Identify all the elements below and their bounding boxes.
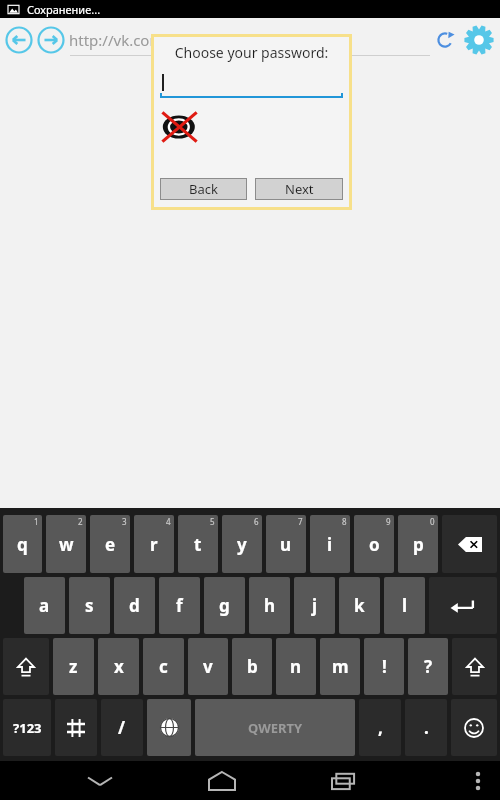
staticText: 5 — [210, 516, 215, 527]
staticText: v — [203, 655, 213, 678]
button[interactable]: b — [232, 638, 272, 695]
button[interactable]: k — [339, 577, 380, 634]
button[interactable]: Hide keyboard — [78, 761, 122, 800]
button[interactable]: / — [101, 699, 143, 756]
staticText: l — [402, 594, 408, 617]
staticText: u — [280, 533, 292, 556]
staticText: d — [129, 594, 140, 617]
staticText: b — [247, 655, 258, 678]
button[interactable]: h — [249, 577, 290, 634]
staticText: / — [118, 716, 126, 739]
staticText: a — [39, 594, 50, 617]
button[interactable]: ?123 — [3, 699, 51, 756]
button[interactable]: ! — [364, 638, 404, 695]
button[interactable]: s — [69, 577, 110, 634]
staticText: k — [354, 594, 365, 617]
staticText: 0 — [430, 516, 435, 527]
button[interactable]: p — [398, 515, 438, 573]
button[interactable]: Home — [200, 761, 244, 800]
button[interactable]: x — [98, 638, 139, 695]
staticText: c — [159, 655, 168, 678]
staticText: q — [17, 533, 28, 556]
button[interactable]: l — [384, 577, 425, 634]
staticText: h — [264, 594, 276, 617]
staticText: 4 — [166, 516, 171, 527]
button[interactable]: j — [294, 577, 335, 634]
button[interactable]: Reload — [430, 25, 460, 55]
staticText: Back — [189, 180, 218, 198]
button[interactable]: Delete — [442, 515, 497, 573]
button[interactable]: e — [90, 515, 130, 573]
button[interactable]: , — [359, 699, 401, 756]
staticText: n — [290, 655, 302, 678]
button[interactable]: More options — [460, 763, 496, 799]
button[interactable]: Change language — [147, 699, 191, 756]
button[interactable]: c — [143, 638, 184, 695]
staticText: e — [105, 533, 116, 556]
button[interactable]: f — [159, 577, 200, 634]
staticText: g — [219, 594, 230, 617]
button[interactable]: Settings — [55, 699, 97, 756]
staticText: 9 — [386, 516, 391, 527]
staticText: f — [176, 594, 183, 617]
button[interactable]: ? — [408, 638, 448, 695]
staticText: r — [150, 533, 158, 556]
staticText: p — [413, 533, 424, 556]
button[interactable]: g — [204, 577, 245, 634]
staticText: Сохранение... — [27, 2, 101, 17]
staticText: 3 — [122, 516, 127, 527]
button[interactable]: Shift — [452, 638, 497, 695]
button[interactable]: o — [354, 515, 394, 573]
staticText: . — [424, 716, 429, 739]
staticText: 6 — [254, 516, 259, 527]
staticText: http://vk.com/join — [69, 30, 196, 50]
button[interactable]: q — [3, 515, 42, 573]
button[interactable]: Enter — [429, 577, 497, 634]
staticText: j — [312, 594, 318, 617]
button[interactable]: v — [188, 638, 228, 695]
staticText: s — [85, 594, 94, 617]
button[interactable]: d — [114, 577, 155, 634]
button[interactable]: Back — [3, 24, 35, 56]
button[interactable]: http://vk.com/join — [69, 24, 430, 56]
button[interactable]: QWERTY — [195, 699, 355, 756]
button[interactable]: Shift — [3, 638, 49, 695]
staticText: t — [194, 533, 202, 556]
staticText: Next — [285, 180, 314, 198]
button[interactable]: n — [276, 638, 316, 695]
button[interactable]: Next — [255, 178, 343, 200]
staticText: m — [332, 655, 349, 678]
staticText: , — [378, 716, 383, 739]
staticText: 7 — [298, 516, 303, 527]
button[interactable]: m — [320, 638, 360, 695]
staticText: w — [59, 533, 74, 556]
button[interactable]: y — [222, 515, 262, 573]
staticText: i — [327, 533, 333, 556]
button[interactable]: Recents — [322, 761, 366, 800]
button[interactable]: i — [310, 515, 350, 573]
button[interactable]: z — [53, 638, 94, 695]
button[interactable]: u — [266, 515, 306, 573]
button[interactable]: Forward — [35, 24, 67, 56]
button[interactable]: a — [24, 577, 65, 634]
staticText: x — [114, 655, 124, 678]
button[interactable]: r — [134, 515, 174, 573]
button[interactable]: Back — [160, 178, 247, 200]
staticText: Choose your password: — [154, 43, 349, 62]
staticText: QWERTY — [248, 719, 303, 737]
button[interactable]: . — [405, 699, 447, 756]
staticText: o — [369, 533, 380, 556]
staticText: ! — [382, 655, 387, 678]
staticText: 1 — [34, 516, 39, 527]
button[interactable]: t — [178, 515, 218, 573]
staticText: ? — [424, 655, 433, 678]
button[interactable]: w — [46, 515, 86, 573]
staticText: z — [69, 655, 78, 678]
button[interactable]: Settings — [460, 21, 498, 59]
staticText: 2 — [78, 516, 83, 527]
button[interactable]: Emoji — [451, 699, 497, 756]
staticText: y — [237, 533, 247, 556]
button[interactable] — [160, 72, 343, 98]
staticText: 8 — [342, 516, 347, 527]
staticText: ?123 — [13, 719, 42, 737]
